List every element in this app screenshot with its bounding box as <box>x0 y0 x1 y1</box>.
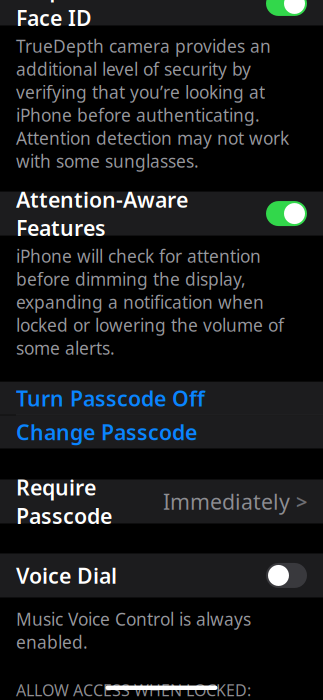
staticText: Voice Dial <box>16 561 117 590</box>
staticText: Attention-Aware Features <box>16 185 188 242</box>
staticText: > <box>296 488 307 515</box>
staticText: TrueDepth camera provides an additional … <box>16 34 289 173</box>
staticText: Immediately <box>163 487 290 516</box>
button[interactable]: Voice Dial <box>0 553 323 597</box>
staticText: Music Voice Control is always enabled. <box>16 607 251 653</box>
staticText: Turn Passcode Off <box>16 384 205 412</box>
button[interactable]: Change Passcode <box>0 415 323 448</box>
button[interactable]: Require Attention for Face ID <box>0 0 323 25</box>
button[interactable]: Attention-Aware Features <box>0 192 323 236</box>
staticText: Require Passcode <box>16 473 112 530</box>
staticText: Require Attention for Face ID <box>16 0 238 32</box>
staticText: ALLOW ACCESS WHEN LOCKED: <box>16 679 251 700</box>
button[interactable]: Require Passcode <box>0 479 323 523</box>
staticText: Change Passcode <box>16 418 197 446</box>
button[interactable]: Turn Passcode Off <box>0 382 323 415</box>
staticText: iPhone will check for attention before d… <box>16 245 284 360</box>
